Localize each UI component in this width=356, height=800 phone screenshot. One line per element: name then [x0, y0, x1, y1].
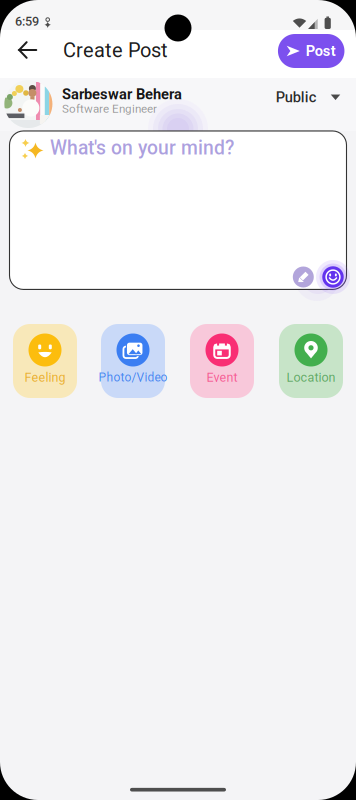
staticText: What's on your mind? [50, 137, 234, 159]
button[interactable]: Emoji [322, 266, 344, 288]
button[interactable]: What's on your mind? [9, 131, 346, 289]
staticText: Photo/Video [98, 370, 167, 385]
button[interactable]: Write [293, 266, 314, 287]
staticText: Public [276, 89, 317, 106]
staticText: Sarbeswar Behera [62, 86, 182, 103]
button[interactable]: Location [279, 324, 343, 398]
staticText: Software Engineer [62, 102, 157, 116]
button[interactable]: Audience: Public [268, 81, 348, 114]
staticText: Create Post [63, 39, 168, 62]
staticText: Post [306, 42, 336, 60]
staticText: Location [286, 370, 335, 385]
button[interactable]: Back [6, 29, 49, 71]
staticText: 6:59 [15, 14, 39, 29]
staticText: Event [206, 370, 237, 385]
button[interactable]: Feeling [13, 324, 77, 398]
staticText: Feeling [24, 370, 65, 385]
button[interactable]: Event [190, 324, 254, 398]
button[interactable]: Photo/Video [101, 324, 165, 398]
button[interactable]: Post [278, 34, 344, 68]
